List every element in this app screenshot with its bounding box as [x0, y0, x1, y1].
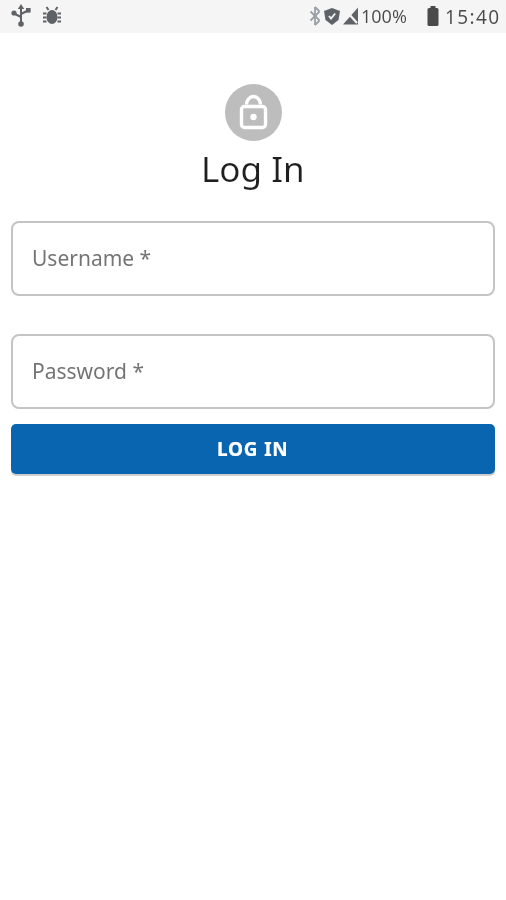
staticText: Log In — [201, 145, 305, 193]
staticText: Password * — [32, 357, 145, 386]
button[interactable]: Username * — [11, 221, 495, 296]
staticText: Username * — [32, 244, 152, 273]
button[interactable]: Password * — [11, 334, 495, 409]
staticText: 100% — [361, 4, 407, 29]
staticText: 15:40 — [445, 4, 501, 30]
button[interactable]: LOG IN — [11, 424, 495, 474]
staticText: LOG IN — [217, 436, 289, 462]
